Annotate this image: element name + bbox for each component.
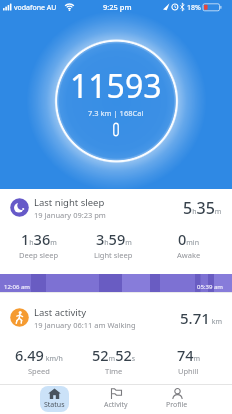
staticText: 7.3 km | 168Cal (88, 108, 144, 118)
staticText: 5h35m (183, 197, 222, 219)
staticText: 0min (178, 229, 199, 249)
button[interactable]: 0min (151, 229, 226, 260)
staticText: 19 January 09:23 pm (34, 210, 106, 220)
button[interactable]: 6.49 km/h (2, 345, 76, 376)
staticText: vodafone AU (14, 3, 57, 13)
staticText: Activity (104, 400, 128, 410)
staticText: 9:25 pm (103, 2, 132, 12)
staticText: 52m52s (92, 345, 136, 365)
staticText: Uphill (178, 366, 199, 376)
staticText: 1h36m (21, 229, 57, 249)
staticText: Last night sleep (34, 196, 105, 209)
staticText: 74m (177, 345, 201, 365)
staticText: 18% (187, 3, 201, 13)
staticText: Status (44, 400, 65, 410)
staticText: 6.49 km/h (15, 345, 63, 365)
staticText: Time (105, 366, 123, 376)
button[interactable]: Profile (149, 386, 205, 412)
staticText: 12:06 am (4, 283, 30, 291)
staticText: Awake (177, 250, 201, 260)
staticText: 19 January 06:11 am Walking (34, 320, 136, 330)
button[interactable]: 1h36m (2, 229, 76, 260)
button[interactable]: 3h59m (76, 229, 151, 260)
staticText: Last activity (34, 306, 87, 319)
staticText: Speed (28, 366, 50, 376)
staticText: Light sleep (94, 250, 133, 260)
button[interactable]: Activity (88, 386, 144, 412)
button[interactable]: 52m52s (76, 345, 151, 376)
button[interactable]: Last night sleep (0, 189, 232, 226)
staticText: 05:39 am (197, 283, 223, 291)
staticText: Deep sleep (19, 250, 59, 260)
staticText: Profile (166, 400, 188, 410)
button[interactable]: 74m (151, 345, 226, 376)
staticText: 11593 (70, 64, 162, 108)
button[interactable]: Last activity (0, 299, 232, 336)
staticText: 3h59m (96, 229, 132, 249)
staticText: 5.71 km (180, 308, 222, 328)
button[interactable]: Status (40, 386, 69, 412)
